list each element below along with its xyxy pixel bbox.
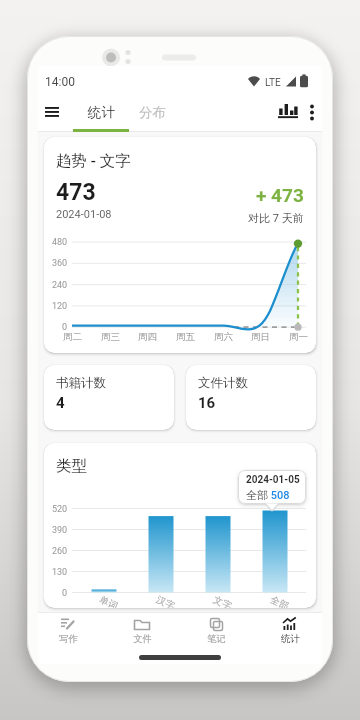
staticText: 520 [52,504,68,515]
staticText: 趋势 - 文字 [56,151,131,171]
staticText: 统计 [88,104,115,121]
staticText: + 473 [256,184,304,206]
staticText: 对比 7 天前 [248,211,304,225]
staticText: 120 [52,301,68,312]
staticText: 260 [52,546,68,557]
staticText: 4 [56,394,65,412]
staticText: 0 [62,322,68,333]
staticText: 480 [52,237,68,248]
staticText: 360 [52,258,68,269]
button[interactable] [304,96,322,128]
staticText: 分布 [139,104,166,121]
button[interactable]: 文件计数 [186,365,316,430]
button[interactable]: 统计 [258,614,322,652]
staticText: 周三 [101,331,120,343]
staticText: 周一 [289,331,308,343]
staticText: 全部 508 [246,488,290,502]
staticText: 书籍计数 [56,375,106,391]
staticText: 文字 [211,593,234,608]
staticText: 14:00 [45,75,75,89]
button[interactable] [272,96,304,128]
staticText: 2024-01-05 [246,474,300,486]
button[interactable] [38,92,74,132]
button[interactable]: 分布 [130,92,175,132]
staticText: LTE [265,77,281,89]
staticText: 周四 [138,331,157,343]
staticText: 473 [56,179,96,206]
staticText: 240 [52,280,68,291]
staticText: 0 [62,588,68,599]
button[interactable]: 类型 [44,443,316,608]
staticText: 笔记 [207,633,226,645]
button[interactable]: 统计 [73,92,129,132]
staticText: 16 [198,394,216,412]
button[interactable]: 文件 [110,614,174,652]
staticText: 周日 [251,331,270,343]
staticText: 2024-01-08 [56,208,112,221]
staticText: 390 [52,525,68,536]
staticText: 全部 [268,593,291,608]
staticText: 周二 [63,331,82,343]
button[interactable]: 笔记 [184,614,248,652]
staticText: 130 [52,567,68,578]
staticText: 汉字 [154,593,177,608]
button[interactable]: 趋势 - 文字 [44,137,316,353]
staticText: 周六 [214,331,233,343]
staticText: 周五 [176,331,195,343]
staticText: 文件计数 [198,375,248,391]
staticText: 写作 [59,633,78,645]
staticText: 统计 [281,633,300,645]
button[interactable]: 写作 [36,614,100,652]
staticText: 类型 [56,456,87,476]
button[interactable]: 书籍计数 [44,365,174,430]
staticText: 文件 [133,633,152,645]
staticText: 单词 [97,593,120,608]
